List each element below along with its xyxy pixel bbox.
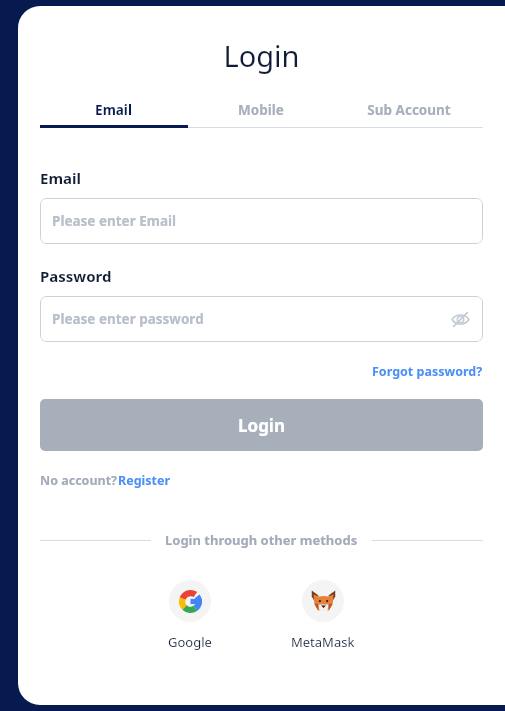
button[interactable]: Login [40,399,483,451]
staticText: No account? [40,472,118,489]
button[interactable]: Google [164,576,216,655]
staticText: Please enter Email [52,212,177,230]
button[interactable]: Please enter Email [40,198,483,244]
staticText: Register [118,472,171,489]
button[interactable]: Mobile [187,95,335,125]
staticText: Email [95,101,132,119]
button[interactable]: Please enter password [40,296,483,342]
button[interactable]: Forgot password? [372,363,483,380]
staticText: Please enter password [52,310,204,328]
staticText: MetaMask [291,633,355,651]
staticText: Mobile [238,101,284,119]
button[interactable]: Show password [447,306,473,332]
staticText: Email [40,168,81,188]
staticText: Google [168,633,212,651]
staticText: Login [18,36,505,75]
staticText: Sub Account [367,101,451,119]
staticText: Login through other methods [165,531,358,549]
staticText: Forgot password? [372,363,483,380]
button[interactable]: Register [118,472,171,489]
button[interactable]: MetaMask [287,576,359,655]
staticText: Password [40,266,112,286]
staticText: Login [238,414,286,437]
button[interactable]: Sub Account [335,95,483,125]
button[interactable]: Email [40,95,187,125]
